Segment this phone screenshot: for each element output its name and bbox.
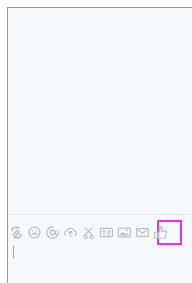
button[interactable]: Thumbs up [151,223,170,242]
button[interactable]: Insert link [133,223,152,242]
button[interactable]: Insert photo [115,223,134,242]
button[interactable]: Mention [43,223,62,242]
button[interactable]: Insert signature [97,223,116,242]
button[interactable]: Insert emoji [25,223,44,242]
button[interactable]: Confidential mode [79,223,98,242]
button[interactable]: Insert from Drive [61,223,80,242]
button[interactable]: Attach file [7,223,26,242]
